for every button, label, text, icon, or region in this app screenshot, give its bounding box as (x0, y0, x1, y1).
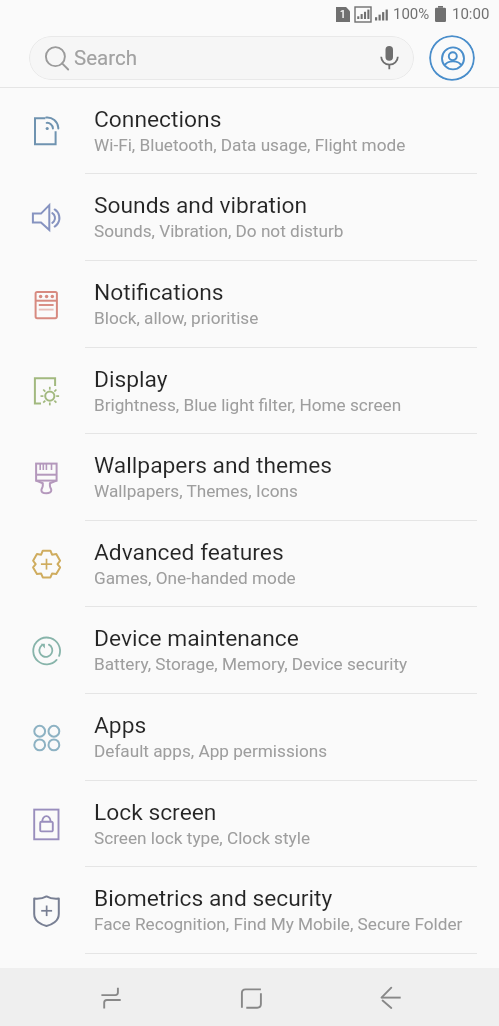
staticText: Apps (94, 712, 147, 739)
button[interactable]: Biometrics and security (0, 867, 499, 954)
button[interactable]: Advanced features (0, 521, 499, 607)
staticText: Sounds and vibration (94, 192, 308, 219)
staticText: Wi-Fi, Bluetooth, Data usage, Flight mod… (94, 135, 406, 155)
staticText: Screen lock type, Clock style (94, 828, 311, 848)
staticText: Face Recognition, Find My Mobile, Secure… (94, 914, 463, 934)
staticText: Connections (94, 106, 222, 133)
staticText: Block, allow, prioritise (94, 308, 259, 328)
button[interactable]: Wallpapers and themes (0, 434, 499, 521)
staticText: Default apps, App permissions (94, 741, 328, 761)
staticText: Notifications (94, 279, 224, 306)
button[interactable]: Recents (76, 968, 146, 1026)
staticText: Search (74, 46, 381, 70)
button[interactable]: Search (29, 36, 414, 80)
staticText: Biometrics and security (94, 885, 333, 912)
button[interactable]: Account (429, 35, 475, 81)
button[interactable]: Home (216, 968, 286, 1026)
button[interactable]: Sounds and vibration (0, 174, 499, 261)
staticText: Battery, Storage, Memory, Device securit… (94, 654, 408, 674)
staticText: Lock screen (94, 799, 217, 826)
button[interactable]: Connections (0, 88, 499, 174)
staticText: 1 (340, 9, 346, 21)
button[interactable]: Back (356, 968, 426, 1026)
button[interactable]: Notifications (0, 261, 499, 348)
button[interactable]: Display (0, 348, 499, 434)
staticText: Brightness, Blue light filter, Home scre… (94, 395, 402, 415)
button[interactable]: Device maintenance (0, 607, 499, 694)
staticText: 10:00 (452, 5, 490, 23)
other: Voice search (381, 45, 399, 71)
staticText: Wallpapers and themes (94, 452, 333, 479)
button[interactable]: Apps (0, 694, 499, 781)
staticText: Device maintenance (94, 625, 299, 652)
staticText: Sounds, Vibration, Do not disturb (94, 221, 344, 241)
staticText: Display (94, 366, 168, 393)
button[interactable]: Lock screen (0, 781, 499, 867)
staticText: Wallpapers, Themes, Icons (94, 481, 298, 501)
staticText: Advanced features (94, 539, 284, 566)
staticText: 100% (393, 5, 430, 23)
staticText: Games, One-handed mode (94, 568, 296, 588)
